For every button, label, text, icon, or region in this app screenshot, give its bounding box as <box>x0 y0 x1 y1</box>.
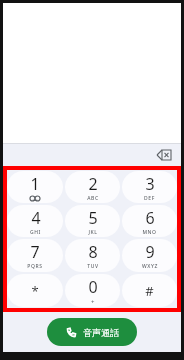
button[interactable]: 9 <box>122 239 177 272</box>
button[interactable]: 3 <box>122 171 177 203</box>
staticText: TUV <box>87 263 99 270</box>
staticText: MNO <box>142 229 157 236</box>
staticText: GHI <box>30 229 41 236</box>
button[interactable]: 2 <box>65 171 120 203</box>
staticText: 0 <box>88 276 98 298</box>
button[interactable]: 7 <box>7 239 63 272</box>
staticText: PQRS <box>27 263 43 270</box>
staticText: DEF <box>144 195 155 202</box>
staticText: 1 <box>30 173 40 195</box>
button[interactable]: 0 <box>65 274 120 307</box>
button[interactable]: 8 <box>65 239 120 272</box>
staticText: 5 <box>88 207 98 229</box>
button[interactable]: * <box>7 274 63 307</box>
button[interactable]: 音声通話 <box>47 318 137 346</box>
staticText: 6 <box>145 207 155 229</box>
staticText: 2 <box>88 173 98 195</box>
staticText: 7 <box>30 241 40 263</box>
button[interactable]: Backspace <box>153 144 175 166</box>
staticText: * <box>31 282 39 300</box>
staticText: + <box>91 298 95 306</box>
button[interactable]: 4 <box>7 205 63 237</box>
staticText: 9 <box>145 241 155 263</box>
staticText: 音声通話 <box>83 327 119 338</box>
staticText: # <box>145 282 154 300</box>
button[interactable]: 6 <box>122 205 177 237</box>
button[interactable]: 5 <box>65 205 120 237</box>
staticText: WXYZ <box>142 263 158 270</box>
staticText: JKL <box>88 229 98 236</box>
staticText: 8 <box>88 241 98 263</box>
staticText: ABC <box>87 195 99 202</box>
staticText: 3 <box>145 173 155 195</box>
button[interactable]: 1 <box>7 171 63 203</box>
staticText: 4 <box>31 207 41 229</box>
button[interactable]: # <box>122 274 177 307</box>
